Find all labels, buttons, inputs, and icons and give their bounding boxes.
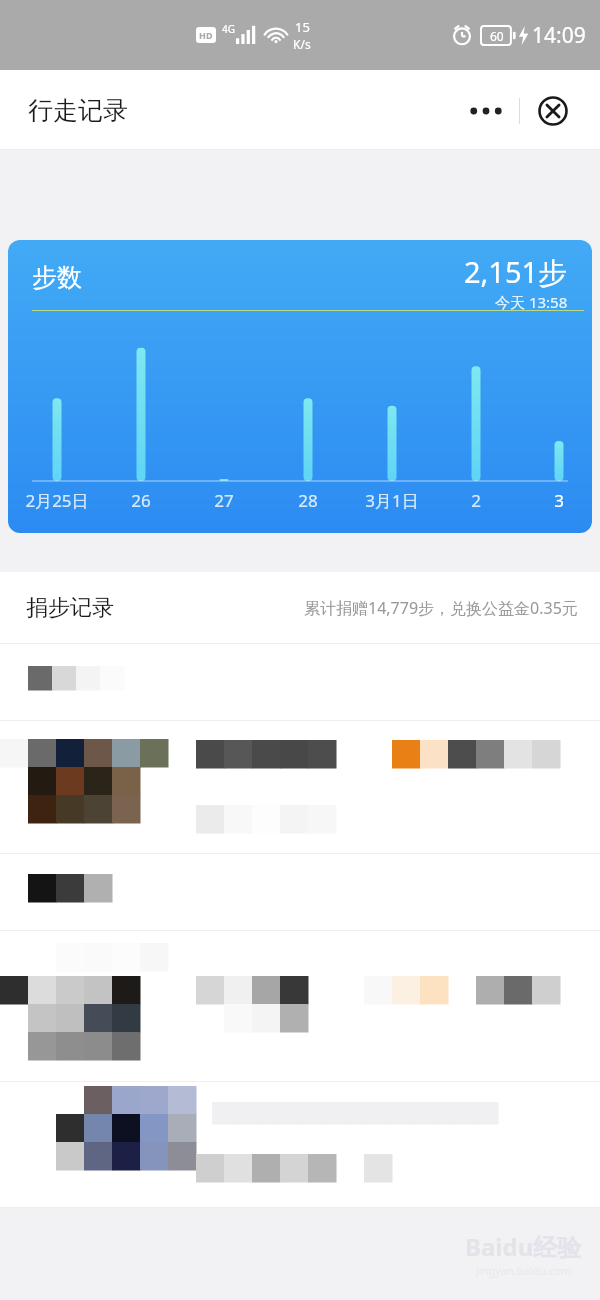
staticText: 4G xyxy=(222,22,235,36)
staticText: 今天 13:58 xyxy=(495,292,568,312)
staticText: HD xyxy=(199,29,213,41)
staticText: 行走记录 xyxy=(28,95,128,126)
button[interactable] xyxy=(0,644,600,720)
button[interactable]: Close xyxy=(520,87,585,134)
button[interactable]: More options xyxy=(453,87,519,134)
staticText: 2 xyxy=(431,489,521,512)
button[interactable] xyxy=(0,854,600,930)
button[interactable]: 步数 xyxy=(8,240,592,533)
staticText: 2,151步 xyxy=(464,252,568,292)
staticText: 3 xyxy=(514,489,592,512)
staticText: 累计捐赠14,779步，兑换公益金0.35元 xyxy=(304,597,578,619)
button[interactable] xyxy=(0,1082,600,1207)
staticText: 27 xyxy=(179,489,269,512)
button[interactable] xyxy=(0,721,600,853)
staticText: Baidu经验 xyxy=(465,1230,582,1263)
staticText: 捐步记录 xyxy=(26,594,114,622)
staticText: 28 xyxy=(263,489,353,512)
staticText: 步数 xyxy=(32,262,82,293)
staticText: 15 xyxy=(295,18,310,36)
staticText: 3月1日 xyxy=(347,489,437,512)
staticText: 2月25日 xyxy=(12,489,102,512)
staticText: 14:09 xyxy=(532,21,586,50)
staticText: jingyan.baidu.com xyxy=(476,1263,572,1278)
staticText: K/s xyxy=(293,36,311,52)
staticText: 26 xyxy=(96,489,186,512)
button[interactable] xyxy=(0,931,600,1081)
staticText: 60 xyxy=(490,28,504,44)
